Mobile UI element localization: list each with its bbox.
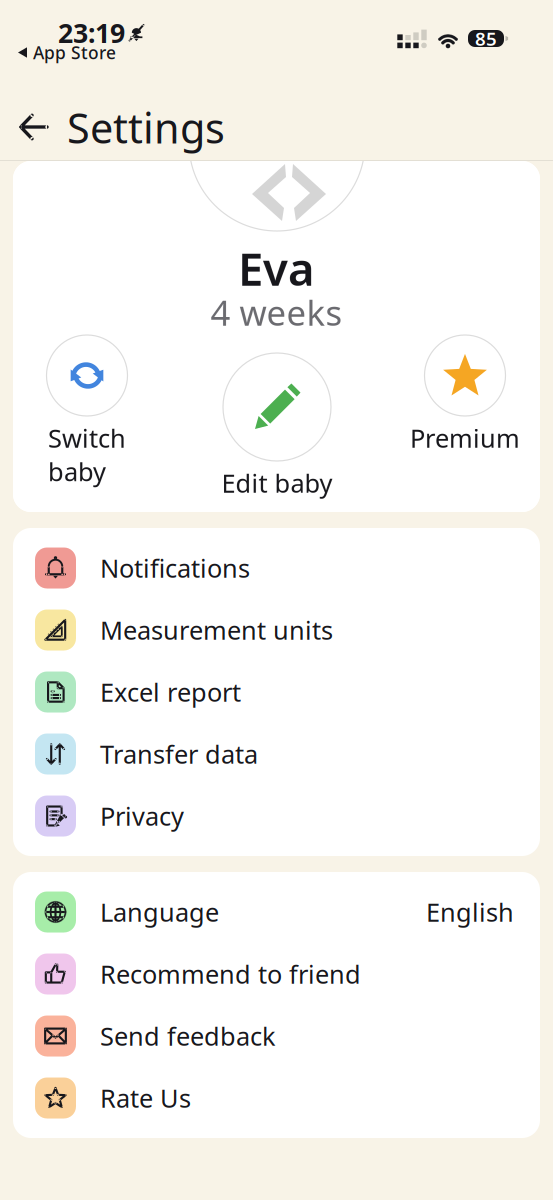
button[interactable]: Recommend to friend xyxy=(13,943,540,1005)
staticText: Notifications xyxy=(100,551,250,585)
staticText: Settings xyxy=(67,100,225,155)
button[interactable]: Language xyxy=(13,881,540,943)
button[interactable]: Notifications xyxy=(13,537,540,599)
staticText: Send feedback xyxy=(100,1019,276,1053)
button[interactable]: Back xyxy=(8,101,60,153)
staticText: Recommend to friend xyxy=(100,957,361,991)
button[interactable]: Measurement units xyxy=(13,599,540,661)
button[interactable]: Switch baby xyxy=(46,335,127,488)
staticText: Privacy xyxy=(100,799,184,833)
staticText: App Store xyxy=(33,41,116,64)
button[interactable]: Send feedback xyxy=(13,1005,540,1067)
staticText: 4 weeks xyxy=(210,289,342,335)
button[interactable]: Excel report xyxy=(13,661,540,723)
staticText: 85 xyxy=(475,26,497,51)
staticText: Measurement units xyxy=(100,613,333,647)
staticText: Premium xyxy=(410,421,520,455)
button[interactable]: Premium xyxy=(410,335,520,455)
button[interactable]: Privacy xyxy=(13,785,540,847)
button[interactable]: Edit baby xyxy=(221,353,332,500)
staticText: Eva xyxy=(238,238,315,298)
staticText: 23:19 xyxy=(58,15,125,50)
button[interactable]: Rate Us xyxy=(13,1067,540,1129)
staticText: Language xyxy=(100,895,219,929)
staticText: Excel report xyxy=(100,675,241,709)
staticText: Switch baby xyxy=(48,421,126,488)
staticText: English xyxy=(426,895,514,929)
button[interactable]: Transfer data xyxy=(13,723,540,785)
staticText: Edit baby xyxy=(221,466,332,500)
staticText: Transfer data xyxy=(100,737,258,771)
staticText: Rate Us xyxy=(100,1081,191,1115)
